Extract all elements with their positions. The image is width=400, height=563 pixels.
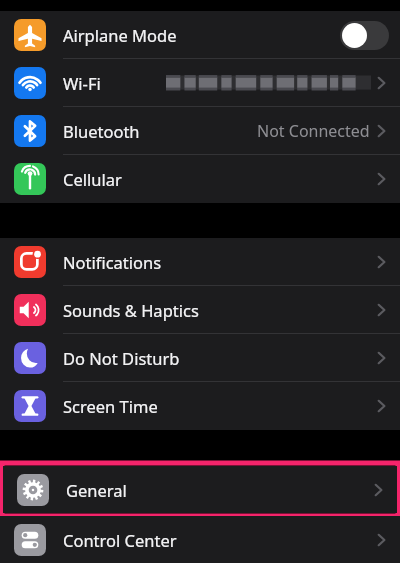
staticText: Not Connected [257, 120, 370, 142]
button[interactable]: Cellular [0, 155, 400, 203]
staticText: Do Not Disturb [63, 347, 180, 369]
button[interactable]: Bluetooth [0, 107, 400, 155]
button[interactable]: Airplane Mode [0, 11, 400, 59]
button[interactable]: Do Not Disturb [0, 334, 400, 382]
staticText: Airplane Mode [63, 24, 177, 46]
button[interactable]: Wi-Fi [0, 59, 400, 107]
staticText: Screen Time [63, 395, 158, 417]
button[interactable]: Notifications [0, 238, 400, 286]
button[interactable]: Sounds & Haptics [0, 286, 400, 334]
staticText: Wi-Fi [63, 72, 101, 94]
button[interactable]: General [3, 466, 397, 513]
button[interactable]: Screen Time [0, 382, 400, 430]
button[interactable]: Control Center [0, 516, 400, 563]
staticText: Notifications [63, 251, 162, 273]
staticText: Bluetooth [63, 120, 140, 142]
staticText: Sounds & Haptics [63, 299, 199, 321]
staticText: General [66, 479, 127, 501]
staticText: Control Center [63, 529, 177, 551]
staticText: Cellular [63, 168, 122, 190]
